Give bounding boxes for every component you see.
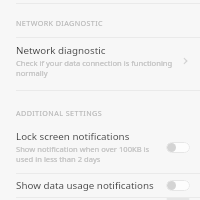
staticText: Network diagnostic xyxy=(16,44,106,57)
button[interactable]: Show data usage notifications xyxy=(0,174,200,197)
staticText: ADDITIONAL SETTINGS xyxy=(16,108,103,118)
staticText: Show data usage notifications xyxy=(16,179,154,192)
button[interactable]: Off xyxy=(166,180,190,191)
button[interactable]: Off xyxy=(166,142,190,153)
staticText: Check if your data connection is functio… xyxy=(16,58,173,78)
staticText: Lock screen notifications xyxy=(16,130,130,143)
staticText: NETWORK DIAGNOSTIC xyxy=(16,18,104,28)
staticText: Show notification when over 100KB is use… xyxy=(16,144,150,164)
button[interactable]: On xyxy=(166,198,190,200)
button[interactable]: Show network speed xyxy=(0,198,200,200)
button[interactable]: Network diagnostic xyxy=(0,38,200,84)
button[interactable]: Lock screen notifications xyxy=(0,126,200,168)
